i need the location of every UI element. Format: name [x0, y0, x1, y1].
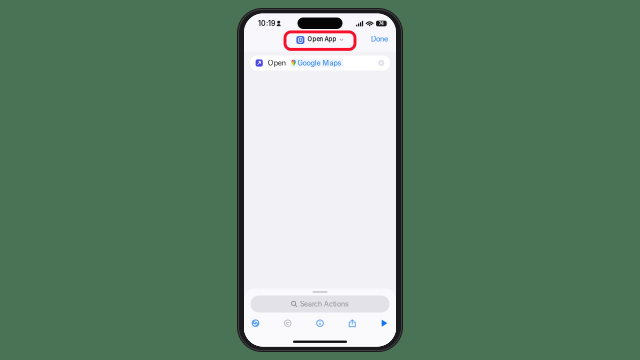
button[interactable]: Share [341, 317, 363, 330]
button[interactable]: Actions [244, 317, 266, 330]
staticText: Open [268, 59, 286, 67]
staticText: Done [371, 35, 388, 43]
button[interactable]: Variables [277, 317, 299, 330]
button[interactable]: Open [250, 55, 390, 70]
staticText: Search Actions [300, 300, 349, 308]
staticText: Open App [307, 35, 336, 43]
button[interactable]: Done [367, 33, 392, 45]
staticText: 74 [379, 21, 384, 26]
button[interactable]: Details [309, 317, 331, 330]
staticText: Google Maps [297, 59, 341, 67]
button[interactable]: Open App [292, 33, 348, 45]
button[interactable]: Run [373, 317, 395, 330]
staticText: 10:19 [258, 19, 275, 28]
